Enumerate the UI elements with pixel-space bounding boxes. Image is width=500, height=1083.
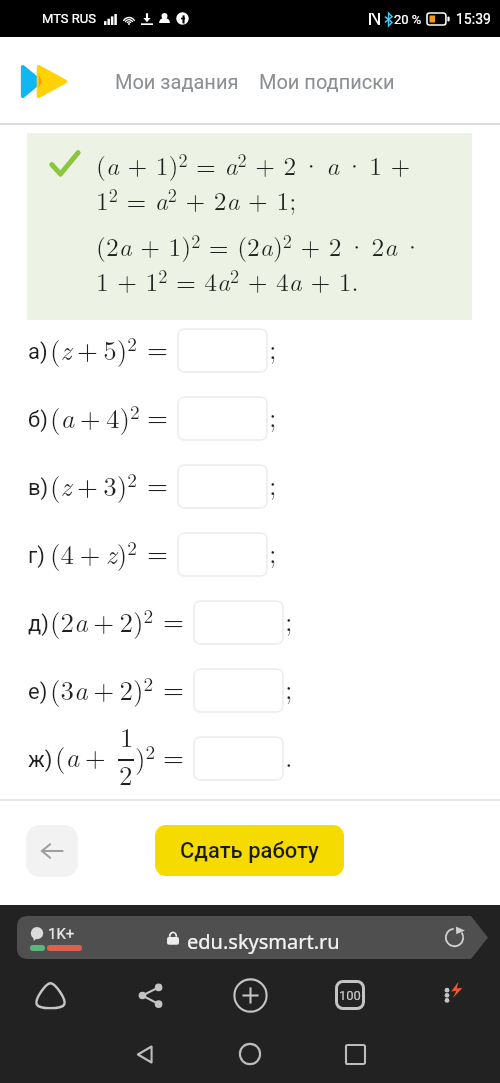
button[interactable] xyxy=(193,668,284,713)
staticText: = xyxy=(147,329,169,367)
staticText: = xyxy=(163,601,185,639)
staticText: ж) xyxy=(28,747,53,773)
staticText: )2 xyxy=(135,737,156,776)
staticText: 1K+ xyxy=(48,925,75,943)
button[interactable] xyxy=(177,464,268,509)
button[interactable]: Сдать работу xyxy=(155,825,344,876)
staticText: 1 xyxy=(120,717,134,755)
staticText: 100 xyxy=(339,988,361,1003)
staticText: ; xyxy=(285,669,293,707)
staticText: = xyxy=(163,669,185,707)
staticText: г) xyxy=(28,543,45,569)
staticText: 2 xyxy=(119,755,133,793)
staticText: (a + xyxy=(55,737,106,775)
staticText: ; xyxy=(269,465,277,503)
staticText: д) xyxy=(28,611,49,637)
button[interactable] xyxy=(193,736,284,781)
button[interactable]: Меню xyxy=(400,965,500,1025)
staticText: е) xyxy=(28,679,48,705)
button[interactable] xyxy=(177,396,268,441)
staticText: (a + 4)2 xyxy=(50,397,140,436)
button[interactable]: Новая вкладка xyxy=(200,965,300,1025)
staticText: а) xyxy=(28,339,48,365)
staticText: 1 + 12 = 4a2 + 4a + 1. xyxy=(96,262,359,299)
staticText: Сдать работу xyxy=(180,838,319,864)
button[interactable]: Мои задания xyxy=(115,70,239,93)
staticText: (4 + z)2 xyxy=(50,533,138,572)
staticText: 15:39 xyxy=(456,11,491,27)
button[interactable]: Вкладки xyxy=(300,965,400,1025)
staticText: ; xyxy=(285,601,293,639)
staticText: (3a + 2)2 xyxy=(50,669,154,708)
button[interactable]: Обновить xyxy=(443,926,466,949)
button[interactable]: Яндекс xyxy=(0,965,100,1025)
staticText: ; xyxy=(269,329,277,367)
staticText: (2a + 1)2 = (2a)2 + 2 · 2a · xyxy=(96,227,423,264)
staticText: . xyxy=(285,737,293,775)
button[interactable]: Recents xyxy=(338,1037,372,1071)
staticText: (z + 3)2 xyxy=(50,465,138,504)
staticText: (a + 1)2 = a2 + 2 · a · 1 + xyxy=(96,146,411,183)
staticText: в) xyxy=(28,475,49,501)
button[interactable] xyxy=(177,328,268,373)
button[interactable]: Home xyxy=(233,1037,267,1071)
staticText: = xyxy=(147,397,169,435)
staticText: (z + 5)2 xyxy=(50,329,138,368)
button[interactable] xyxy=(177,532,268,577)
staticText: = xyxy=(163,737,185,775)
staticText: 20 % xyxy=(394,12,422,27)
staticText: = xyxy=(147,533,169,571)
staticText: MTS RUS xyxy=(42,11,96,26)
button[interactable] xyxy=(193,600,284,645)
staticText: ; xyxy=(269,397,277,435)
staticText: (2a + 2)2 xyxy=(50,601,154,640)
button[interactable]: Поделиться xyxy=(100,965,200,1025)
staticText: = xyxy=(147,465,169,503)
staticText: б) xyxy=(28,407,48,433)
staticText: edu.skysmart.ru xyxy=(187,928,340,955)
button[interactable]: Мои подписки xyxy=(259,70,395,93)
button[interactable]: Back xyxy=(128,1037,162,1071)
staticText: ; xyxy=(269,533,277,571)
button[interactable]: Назад xyxy=(26,825,78,877)
staticText: 12 = a2 + 2a + 1; xyxy=(96,181,297,218)
